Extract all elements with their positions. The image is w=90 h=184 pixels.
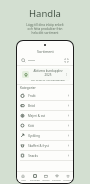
staticText: och ta del av 100 erbjudanden: [31, 78, 65, 81]
button[interactable]: Sortiment: [29, 172, 40, 183]
other: Open Frukt: [67, 94, 70, 97]
staticText: Skafferi & fryst: [28, 144, 49, 148]
staticText: Bröd: [28, 104, 35, 108]
button[interactable]: Bröd: [17, 101, 73, 110]
other: Open Bröd: [67, 104, 70, 107]
button[interactable]: Frukt: [17, 91, 73, 100]
button[interactable]: Aktivera kundupplev 2025: [20, 68, 70, 81]
other: Open Kött: [67, 124, 70, 127]
other: Search: [21, 58, 26, 63]
staticText: och hitta produkter från: [17, 27, 73, 31]
staticText: Handla: [29, 7, 61, 20]
button[interactable]: Kyckling: [17, 131, 73, 140]
button[interactable]: Snacks: [17, 151, 73, 160]
staticText: Favoriter: [52, 179, 61, 182]
staticText: Sortiment: [30, 179, 40, 182]
other: Open Skafferi & fryst: [67, 144, 70, 147]
button[interactable]: Favoriter: [51, 172, 62, 183]
staticText: Butiker: [42, 179, 50, 182]
other: Open Snacks: [67, 154, 70, 157]
staticText: Sortiment: [37, 49, 54, 54]
other: Open Kyckling: [67, 134, 70, 137]
staticText: Kategorier: [20, 86, 36, 90]
staticText: Lägg till dina inköp enkelt: [17, 23, 73, 27]
button[interactable]: Kött: [17, 121, 73, 130]
staticText: Kundkorg: [63, 179, 73, 182]
staticText: Kött: [28, 124, 34, 128]
button[interactable]: Butiker: [40, 172, 51, 183]
staticText: Frukt: [28, 94, 36, 98]
button[interactable]: Kundkorg: [62, 172, 73, 183]
button[interactable]: Mejeri & ost: [17, 111, 73, 120]
staticText: Snacks: [28, 154, 38, 158]
staticText: Aktivera kundupplev 2025: [31, 69, 65, 77]
staticText: Hem: [21, 179, 26, 182]
staticText: hela ditt sortiment: [17, 31, 73, 35]
button[interactable]: Hem: [17, 172, 29, 183]
other: Open Mejeri & ost: [67, 114, 70, 117]
other: Scan: [64, 58, 69, 63]
other: More: [65, 73, 68, 76]
staticText: Mejeri & ost: [28, 114, 45, 118]
button[interactable]: Skafferi & fryst: [17, 141, 73, 150]
button[interactable]: Search: [17, 55, 73, 65]
staticText: Kyckling: [28, 134, 40, 138]
